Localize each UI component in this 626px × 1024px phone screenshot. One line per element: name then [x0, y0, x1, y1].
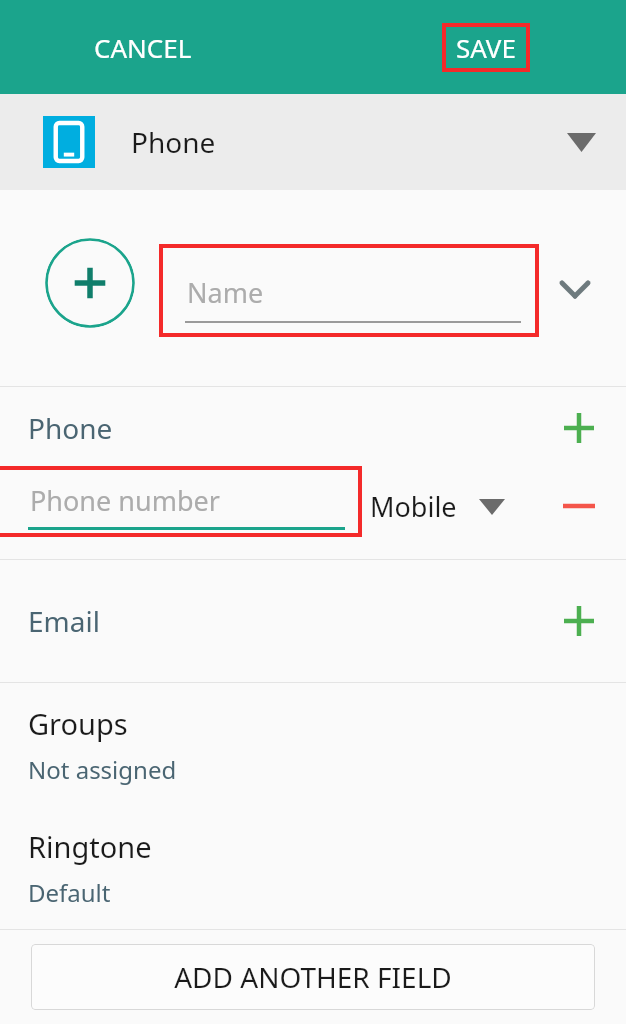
button[interactable]: Add photo	[45, 238, 135, 328]
button[interactable]: Remove phone	[548, 475, 610, 537]
button[interactable]: Expand name	[552, 266, 598, 312]
button[interactable]: Add Email	[548, 590, 610, 652]
staticText: SAVE	[456, 30, 516, 65]
staticText: Email	[28, 602, 100, 640]
button[interactable]: SAVE	[442, 23, 530, 72]
button[interactable]: Add Phone	[548, 397, 610, 459]
staticText: Phone	[131, 123, 216, 161]
button[interactable]: Groups	[0, 683, 626, 806]
staticText: Phone number	[30, 482, 220, 519]
button[interactable]: Ringtone	[0, 806, 626, 929]
staticText: ADD ANOTHER FIELD	[174, 958, 452, 996]
button[interactable]: CANCEL	[88, 22, 198, 73]
staticText: Phone	[28, 409, 113, 447]
staticText: Default	[28, 876, 111, 909]
staticText: Not assigned	[28, 753, 177, 786]
staticText: Ringtone	[28, 827, 152, 866]
staticText: Name	[187, 274, 264, 311]
staticText: CANCEL	[94, 30, 192, 65]
button[interactable]: Name	[159, 244, 539, 337]
button[interactable]: ADD ANOTHER FIELD	[31, 944, 595, 1010]
button[interactable]: Phone number	[0, 466, 362, 537]
button[interactable]: Phone	[0, 94, 626, 190]
button[interactable]: Mobile	[370, 488, 505, 525]
staticText: Groups	[28, 704, 128, 743]
staticText: Mobile	[370, 488, 457, 525]
